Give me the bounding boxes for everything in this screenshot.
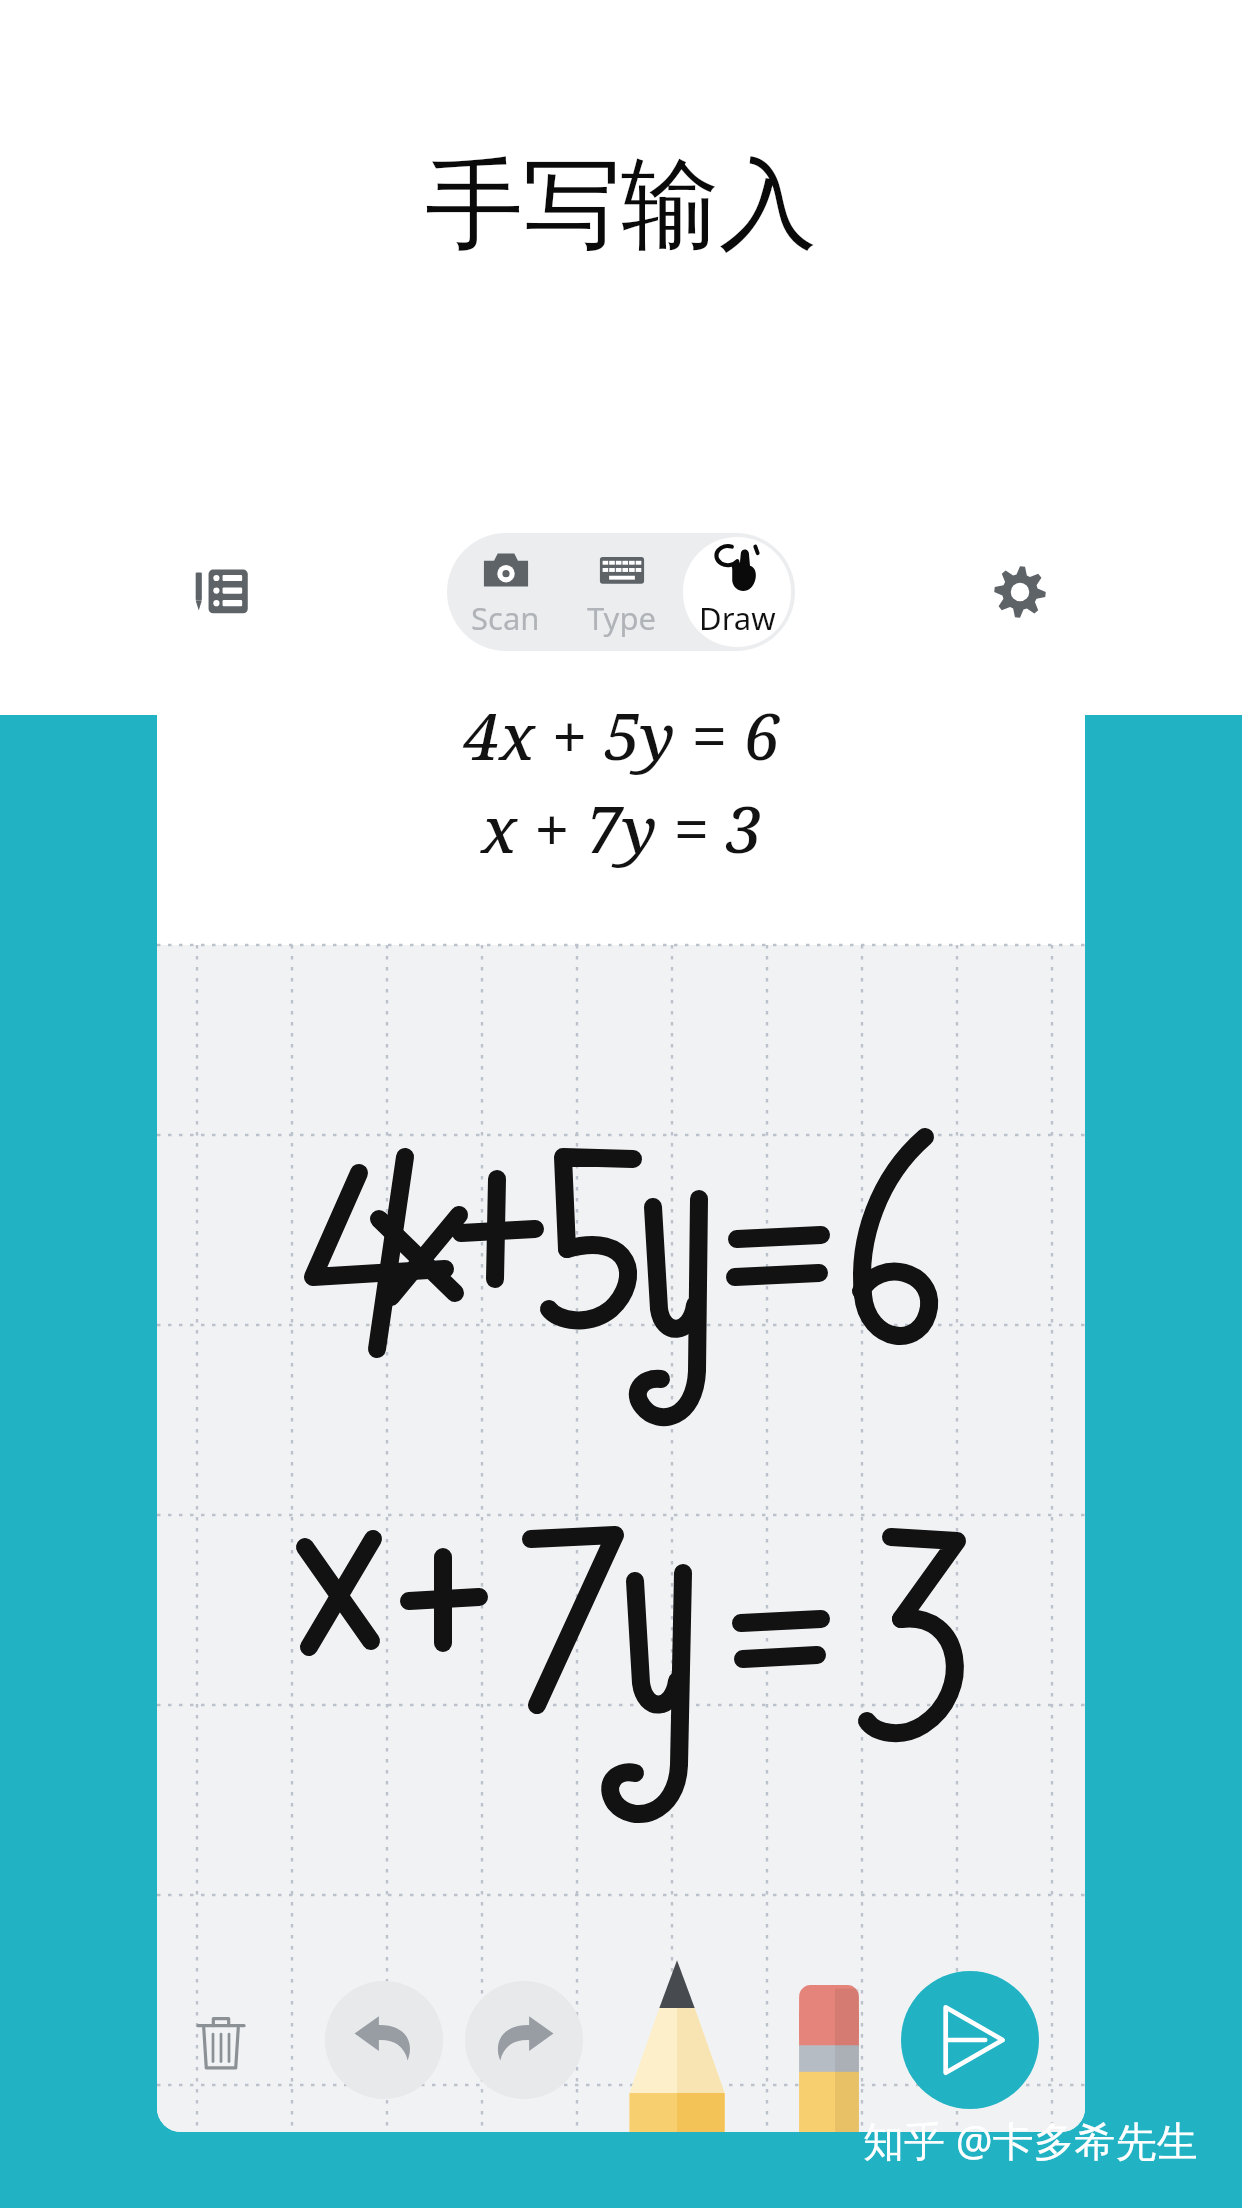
button[interactable]: Pen xyxy=(609,1955,745,2132)
button[interactable]: Redo xyxy=(465,1981,583,2099)
staticText: x + 7y = 3 xyxy=(481,785,762,872)
staticText: Draw xyxy=(699,597,776,639)
button[interactable]: Scan xyxy=(451,537,559,647)
staticText: Scan xyxy=(471,597,540,639)
staticText: 4x + 5y = 6 xyxy=(463,692,780,779)
button[interactable]: Type xyxy=(567,537,675,647)
staticText: 手写输入 xyxy=(425,144,817,267)
button[interactable]: Draw xyxy=(683,537,791,647)
button[interactable]: History xyxy=(177,547,267,637)
staticText: 知乎 @卡多希先生 xyxy=(863,2112,1198,2168)
button[interactable]: Settings xyxy=(975,547,1065,637)
button[interactable]: Eraser xyxy=(761,1955,897,2132)
button[interactable]: Undo xyxy=(325,1981,443,2099)
button[interactable]: Delete xyxy=(169,1991,273,2095)
staticText: Type xyxy=(587,597,656,639)
button[interactable]: Send xyxy=(901,1971,1039,2109)
